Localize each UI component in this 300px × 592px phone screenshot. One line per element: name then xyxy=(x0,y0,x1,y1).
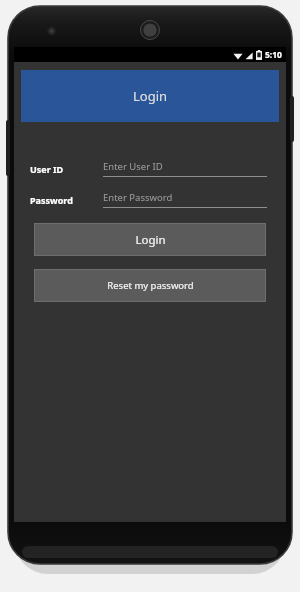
button[interactable]: Login xyxy=(34,223,266,256)
staticText: Password xyxy=(30,194,103,206)
button[interactable]: Enter Password xyxy=(103,191,267,208)
staticText: User ID xyxy=(30,163,103,175)
staticText: Enter Password xyxy=(103,191,173,204)
button[interactable]: Enter User ID xyxy=(103,160,267,177)
staticText: Reset my password xyxy=(107,279,194,292)
button[interactable]: Reset my password xyxy=(34,269,266,302)
button[interactable]: Login xyxy=(21,70,279,122)
staticText: Enter User ID xyxy=(103,160,163,173)
staticText: 5:10 xyxy=(265,49,282,61)
staticText: Login xyxy=(133,87,168,105)
staticText: Login xyxy=(135,232,166,248)
